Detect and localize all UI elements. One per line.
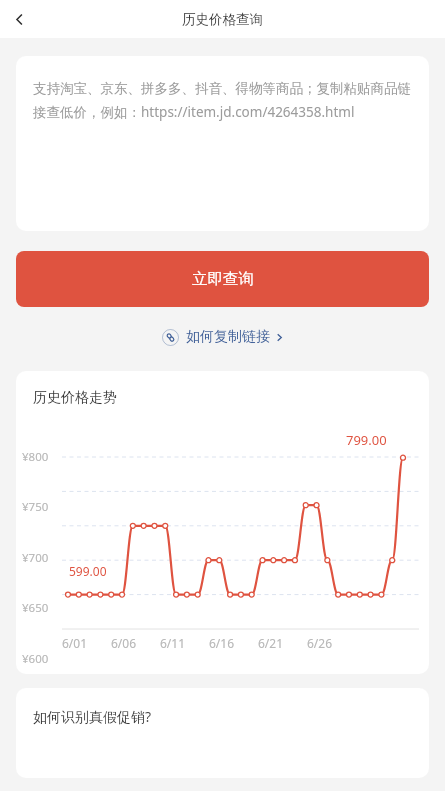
staticText: ¥750 [22, 499, 49, 515]
staticText: 立即查询 [192, 269, 254, 289]
staticText: ¥800 [22, 449, 49, 465]
staticText: ¥650 [22, 600, 49, 616]
staticText: 6/06 [111, 635, 137, 651]
staticText: 799.00 [346, 431, 387, 449]
staticText: 6/21 [258, 635, 284, 651]
staticText: 支持淘宝、京东、拼多多、抖音、得物等商品；复制粘贴商品链接查低价，例如：http… [33, 80, 414, 121]
button[interactable]: 如何识别真假促销? [16, 688, 429, 778]
staticText: 如何识别真假促销? [33, 707, 152, 726]
staticText: 如何复制链接 [186, 328, 270, 346]
staticText: 历史价格查询 [182, 11, 263, 28]
button[interactable]: 如何复制链接 [158, 324, 288, 350]
staticText: 599.00 [69, 563, 107, 579]
staticText: ¥600 [22, 651, 49, 667]
button[interactable]: Back [0, 0, 38, 38]
staticText: 6/16 [209, 635, 235, 651]
staticText: 6/11 [160, 635, 186, 651]
button[interactable]: 立即查询 [16, 251, 429, 307]
staticText: 历史价格走势 [33, 389, 117, 407]
staticText: 6/26 [307, 635, 333, 651]
staticText: ¥700 [22, 550, 49, 566]
staticText: 6/01 [62, 635, 88, 651]
button[interactable]: 支持淘宝、京东、拼多多、抖音、得物等商品；复制粘贴商品链接查低价，例如：http… [16, 56, 429, 231]
